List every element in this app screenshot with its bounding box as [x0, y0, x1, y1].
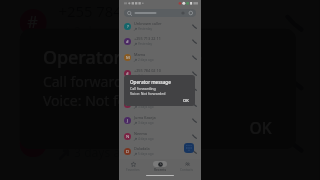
staticText: Yesterday	[138, 42, 153, 46]
staticText: OK	[250, 118, 273, 138]
staticText: Call forwarding	[130, 86, 156, 91]
staticText: #	[27, 13, 39, 36]
staticText: Neema	[134, 131, 147, 136]
staticText: 2 days ago	[138, 58, 154, 62]
button[interactable]: #	[119, 96, 201, 112]
staticText: D	[126, 149, 130, 155]
button[interactable]: Favorites	[120, 159, 146, 175]
staticText: Call forwarding	[43, 71, 144, 91]
staticText: +255 784 02 10	[58, 1, 164, 21]
button[interactable]: Call Unknown caller	[189, 21, 199, 31]
staticText: J	[127, 118, 129, 124]
staticText: Yesterday	[138, 27, 153, 31]
staticText: 3 days ago	[74, 145, 136, 161]
button[interactable]: #	[119, 33, 201, 49]
staticText: Contacts	[180, 168, 194, 172]
staticText: 3 days ago	[138, 105, 154, 109]
staticText: Recents	[154, 168, 167, 172]
staticText: 2 days ago	[74, 25, 136, 40]
button[interactable]: Call +255 765 88 31	[189, 99, 199, 109]
button[interactable]: Recents	[147, 159, 173, 175]
staticText: Operator message	[130, 79, 171, 85]
staticText: 2 days ago	[138, 89, 154, 93]
staticText: Baba	[134, 83, 144, 88]
button[interactable]: B	[0, 48, 320, 110]
button[interactable]: Call Neema	[189, 131, 199, 141]
staticText: ?	[127, 24, 129, 30]
staticText: +255 765 88 31	[58, 122, 164, 142]
button[interactable]: Call Baba	[189, 83, 199, 93]
staticText: 5 days ago	[138, 152, 154, 156]
button[interactable]: J	[0, 173, 320, 180]
button[interactable]: D	[119, 143, 201, 159]
staticText: S	[126, 165, 129, 171]
button[interactable]: B	[119, 80, 201, 96]
button[interactable]: #	[0, 110, 320, 173]
button[interactable]: OK	[181, 97, 191, 103]
staticText: 2 days ago	[138, 74, 154, 78]
staticText: Favorites	[126, 168, 140, 172]
staticText: 2 days ago	[74, 83, 136, 99]
staticText: Operator message	[43, 44, 203, 67]
button[interactable]: Contacts	[174, 159, 200, 175]
staticText: Mama	[134, 52, 146, 57]
button[interactable]	[124, 9, 196, 17]
staticText: N	[126, 134, 130, 140]
button[interactable]: Call Juma Kaseja	[189, 115, 199, 125]
button[interactable]: Call +255 713 22 11	[189, 36, 199, 46]
staticText: Shangazi	[134, 162, 151, 167]
button[interactable]: Dialpad	[184, 143, 194, 153]
button[interactable]: Call Daladala	[189, 146, 199, 156]
staticText: Juma Kaseja	[134, 115, 156, 120]
button[interactable]: Call Shangazi	[189, 162, 199, 172]
staticText: Voice: Not forwarded	[130, 91, 166, 96]
button[interactable]: J	[119, 112, 201, 128]
button[interactable]: ?	[119, 18, 201, 34]
staticText: #	[126, 39, 129, 45]
staticText: OK	[183, 98, 189, 103]
staticText: #	[126, 102, 129, 108]
button[interactable]: Call +255 784 02 10	[189, 68, 199, 78]
staticText: 3 days ago	[138, 121, 154, 125]
staticText: #	[126, 71, 129, 77]
staticText: Unknown caller	[134, 21, 162, 26]
button[interactable]: #	[119, 65, 201, 81]
button[interactable]: Call Mama	[189, 52, 199, 62]
staticText: +255 713 22 11	[134, 36, 161, 41]
button[interactable]: M	[119, 49, 201, 65]
staticText: Voice: Not forwarded	[43, 91, 183, 110]
staticText: M	[126, 55, 130, 61]
staticText: 4 days ago	[138, 137, 154, 141]
button[interactable]: OK	[242, 114, 281, 138]
staticText: +255 784 02 10	[134, 68, 161, 73]
button[interactable]: S	[119, 159, 201, 175]
staticText: Baba	[58, 60, 97, 79]
button[interactable]: #	[0, 0, 320, 52]
staticText: Daladala	[134, 146, 150, 151]
button[interactable]: N	[119, 128, 201, 144]
